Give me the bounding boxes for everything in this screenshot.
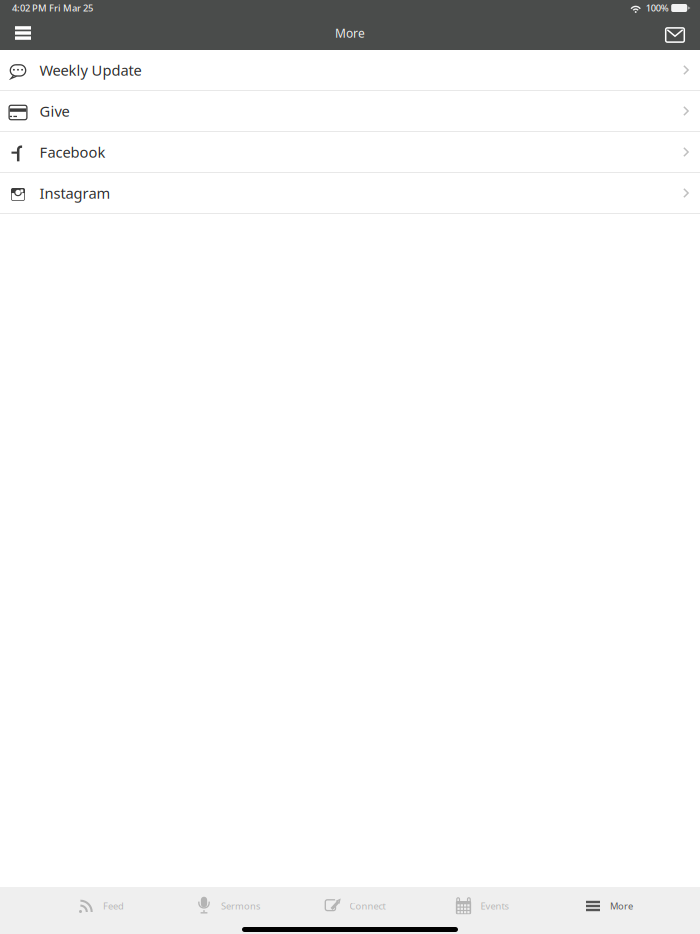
- staticText: Instagram: [39, 183, 110, 203]
- staticText: Weekly Update: [39, 60, 141, 80]
- button[interactable]: Mail: [658, 16, 692, 50]
- staticText: Events: [480, 900, 508, 912]
- button[interactable]: Instagram: [0, 173, 700, 214]
- button[interactable]: Facebook: [0, 132, 700, 173]
- staticText: Fri Mar 25: [49, 2, 93, 14]
- staticText: 100%: [646, 2, 669, 14]
- button[interactable]: Weekly Update: [0, 50, 700, 91]
- staticText: Give: [39, 101, 69, 121]
- button[interactable]: Feed: [37, 888, 164, 924]
- staticText: More: [610, 900, 633, 912]
- staticText: Feed: [103, 900, 124, 912]
- button[interactable]: Menu: [6, 16, 40, 50]
- staticText: More: [335, 25, 365, 41]
- staticText: 4:02 PM: [12, 2, 47, 14]
- staticText: Facebook: [39, 142, 105, 162]
- staticText: Sermons: [221, 900, 260, 912]
- button[interactable]: Give: [0, 91, 700, 132]
- button[interactable]: Connect: [291, 888, 418, 924]
- button[interactable]: Sermons: [164, 888, 291, 924]
- staticText: Connect: [349, 900, 385, 912]
- button[interactable]: More: [545, 888, 672, 924]
- button[interactable]: Events: [418, 888, 545, 924]
